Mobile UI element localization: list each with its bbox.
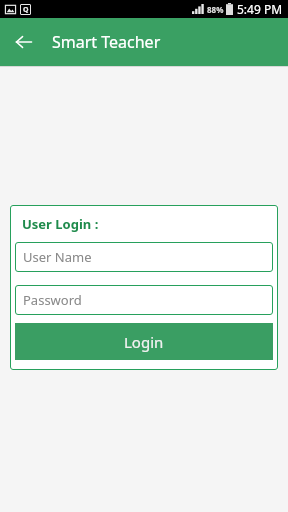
staticText: User Login : [22, 215, 99, 233]
staticText: 5:49 PM [237, 1, 283, 17]
staticText: 88% [207, 4, 224, 15]
staticText: Q [23, 5, 29, 15]
button[interactable]: Password [15, 285, 273, 315]
button[interactable]: Login [15, 323, 273, 360]
button[interactable]: Back [10, 28, 38, 56]
staticText: Smart Teacher [52, 31, 161, 53]
button[interactable]: User Name [15, 242, 273, 272]
staticText: Login [124, 332, 164, 352]
staticText: User Name [23, 248, 92, 266]
staticText: Password [23, 291, 82, 309]
